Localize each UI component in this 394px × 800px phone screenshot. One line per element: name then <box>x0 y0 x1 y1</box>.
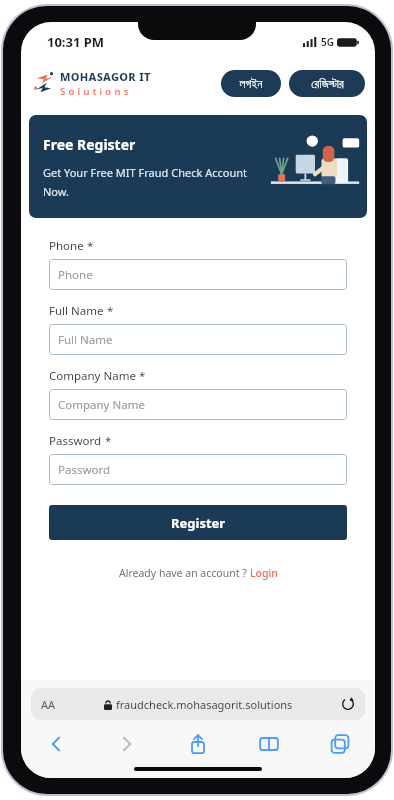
staticText: Phone <box>58 267 93 283</box>
staticText: Full Name <box>49 303 104 319</box>
button[interactable]: Login <box>250 566 278 580</box>
button[interactable]: Password <box>49 454 347 485</box>
button[interactable]: Full Name <box>49 324 347 355</box>
staticText: Get Your Free MIT Fraud Check Account No… <box>43 165 247 199</box>
staticText: Phone <box>49 238 84 254</box>
button[interactable]: রেজিস্টার <box>289 70 365 97</box>
button[interactable]: Tabs <box>323 727 357 761</box>
button[interactable]: Share <box>181 727 215 761</box>
staticText: রেজিস্টার <box>311 78 344 90</box>
staticText: Password <box>49 433 102 449</box>
button[interactable]: Text size <box>31 688 365 720</box>
other: Reload <box>341 697 355 711</box>
staticText: 10:31 PM <box>47 33 105 51</box>
staticText: 5G <box>321 35 334 49</box>
staticText: Full Name <box>58 332 113 348</box>
button[interactable]: Phone <box>49 259 347 290</box>
staticText: S o l u t i o n s <box>60 85 129 98</box>
staticText: fraudcheck.mohasagorit.solutions <box>116 697 293 712</box>
staticText: Free Register <box>43 135 136 154</box>
staticText: * <box>84 238 94 254</box>
button[interactable]: লগইন <box>221 70 281 97</box>
button[interactable]: Register <box>49 505 347 540</box>
button[interactable]: Forward <box>110 727 144 761</box>
staticText: MOHASAGOR IT <box>60 69 151 84</box>
staticText: Already have an account ? <box>119 566 250 580</box>
staticText: Company Name <box>49 368 136 384</box>
staticText: * <box>136 368 146 384</box>
staticText: * <box>102 433 112 449</box>
staticText: Login <box>250 566 278 580</box>
staticText: লগইন <box>239 78 263 90</box>
staticText: Register <box>171 514 226 532</box>
button[interactable]: Company Name <box>49 389 347 420</box>
staticText: Password <box>58 462 111 478</box>
staticText: * <box>104 303 114 319</box>
staticText: Company Name <box>58 397 145 413</box>
staticText: AA <box>41 697 56 712</box>
button[interactable]: Back <box>39 727 73 761</box>
button[interactable]: Bookmarks <box>252 727 286 761</box>
